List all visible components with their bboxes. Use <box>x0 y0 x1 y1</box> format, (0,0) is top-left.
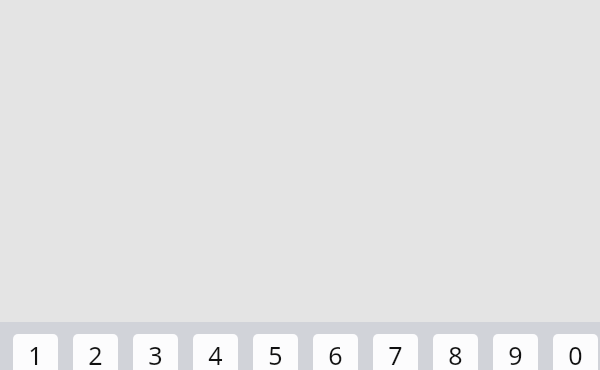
button[interactable]: 0 <box>553 334 598 370</box>
staticText: 3 <box>133 338 178 370</box>
staticText: 1 <box>13 338 58 370</box>
button[interactable]: 3 <box>133 334 178 370</box>
button[interactable]: 2 <box>73 334 118 370</box>
staticText: 9 <box>493 338 538 370</box>
button[interactable]: 7 <box>373 334 418 370</box>
button[interactable]: 4 <box>193 334 238 370</box>
staticText: 6 <box>313 338 358 370</box>
button[interactable]: 8 <box>433 334 478 370</box>
button[interactable]: 9 <box>493 334 538 370</box>
staticText: 5 <box>253 338 298 370</box>
staticText: 2 <box>73 338 118 370</box>
button[interactable]: 5 <box>253 334 298 370</box>
staticText: 0 <box>553 338 598 370</box>
staticText: 8 <box>433 338 478 370</box>
button[interactable]: 6 <box>313 334 358 370</box>
staticText: 4 <box>193 338 238 370</box>
staticText: 7 <box>373 338 418 370</box>
button[interactable]: 1 <box>13 334 58 370</box>
